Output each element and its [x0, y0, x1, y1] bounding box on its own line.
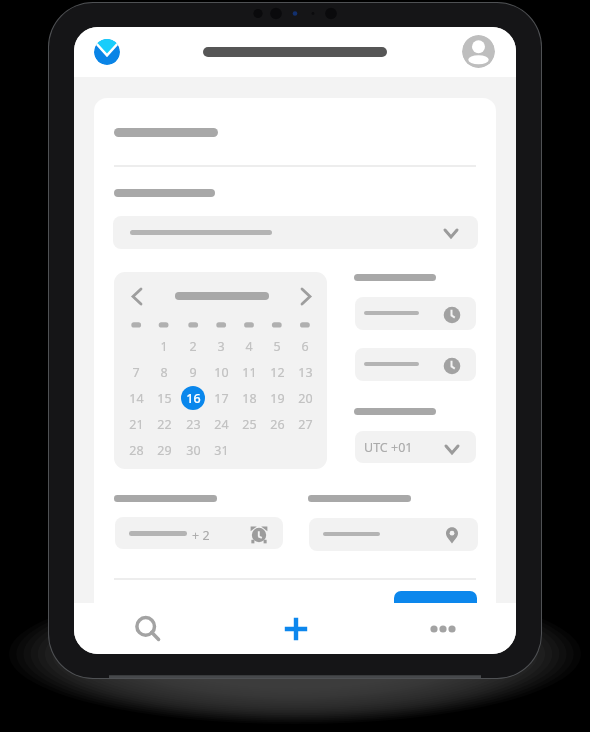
staticText: 28: [129, 442, 144, 459]
staticText: 2: [189, 338, 197, 355]
button[interactable]: [113, 216, 478, 249]
other: Location: [443, 526, 461, 544]
staticText: 30: [186, 442, 201, 459]
staticText: 26: [270, 416, 285, 433]
staticText: 25: [242, 416, 257, 433]
button[interactable]: More options: [369, 603, 516, 654]
other: Pick time: [443, 306, 461, 324]
staticText: 8: [160, 364, 168, 381]
staticText: 22: [157, 416, 172, 433]
staticText: 1: [160, 338, 168, 355]
staticText: 15: [157, 390, 172, 407]
button[interactable]: + 2: [115, 517, 283, 549]
staticText: UTC +01: [364, 439, 413, 456]
staticText: 6: [301, 338, 309, 355]
staticText: 10: [214, 364, 229, 381]
staticText: 4: [245, 338, 253, 355]
other: Reminder: [250, 526, 268, 544]
staticText: 31: [214, 442, 229, 459]
button[interactable]: Next month: [302, 289, 310, 304]
button[interactable]: Location: [309, 518, 478, 551]
button[interactable]: Add: [222, 603, 369, 654]
button[interactable]: Previous month: [133, 289, 141, 304]
button[interactable]: Pick time: [355, 297, 476, 330]
staticText: 16: [186, 390, 201, 407]
staticText: 21: [129, 416, 144, 433]
other: Pick time: [443, 357, 461, 375]
staticText: 18: [242, 390, 257, 407]
button[interactable]: Vivaldi home: [94, 39, 120, 65]
button[interactable]: Search: [74, 603, 222, 654]
staticText: 17: [214, 390, 229, 407]
staticText: + 2: [192, 527, 210, 544]
staticText: 24: [214, 416, 229, 433]
staticText: 5: [273, 338, 281, 355]
staticText: 12: [270, 364, 285, 381]
button[interactable]: Pick time: [355, 348, 476, 381]
staticText: 29: [157, 442, 172, 459]
staticText: 20: [298, 390, 313, 407]
staticText: 9: [189, 364, 197, 381]
staticText: 7: [132, 364, 140, 381]
staticText: 27: [298, 416, 313, 433]
button[interactable]: Account: [462, 35, 495, 68]
staticText: 14: [129, 390, 144, 407]
staticText: 3: [217, 338, 225, 355]
staticText: 19: [270, 390, 285, 407]
button[interactable]: UTC +01: [355, 431, 476, 463]
staticText: 11: [242, 364, 257, 381]
staticText: 13: [298, 364, 313, 381]
button[interactable]: Save event: [394, 591, 477, 623]
staticText: 23: [186, 416, 201, 433]
